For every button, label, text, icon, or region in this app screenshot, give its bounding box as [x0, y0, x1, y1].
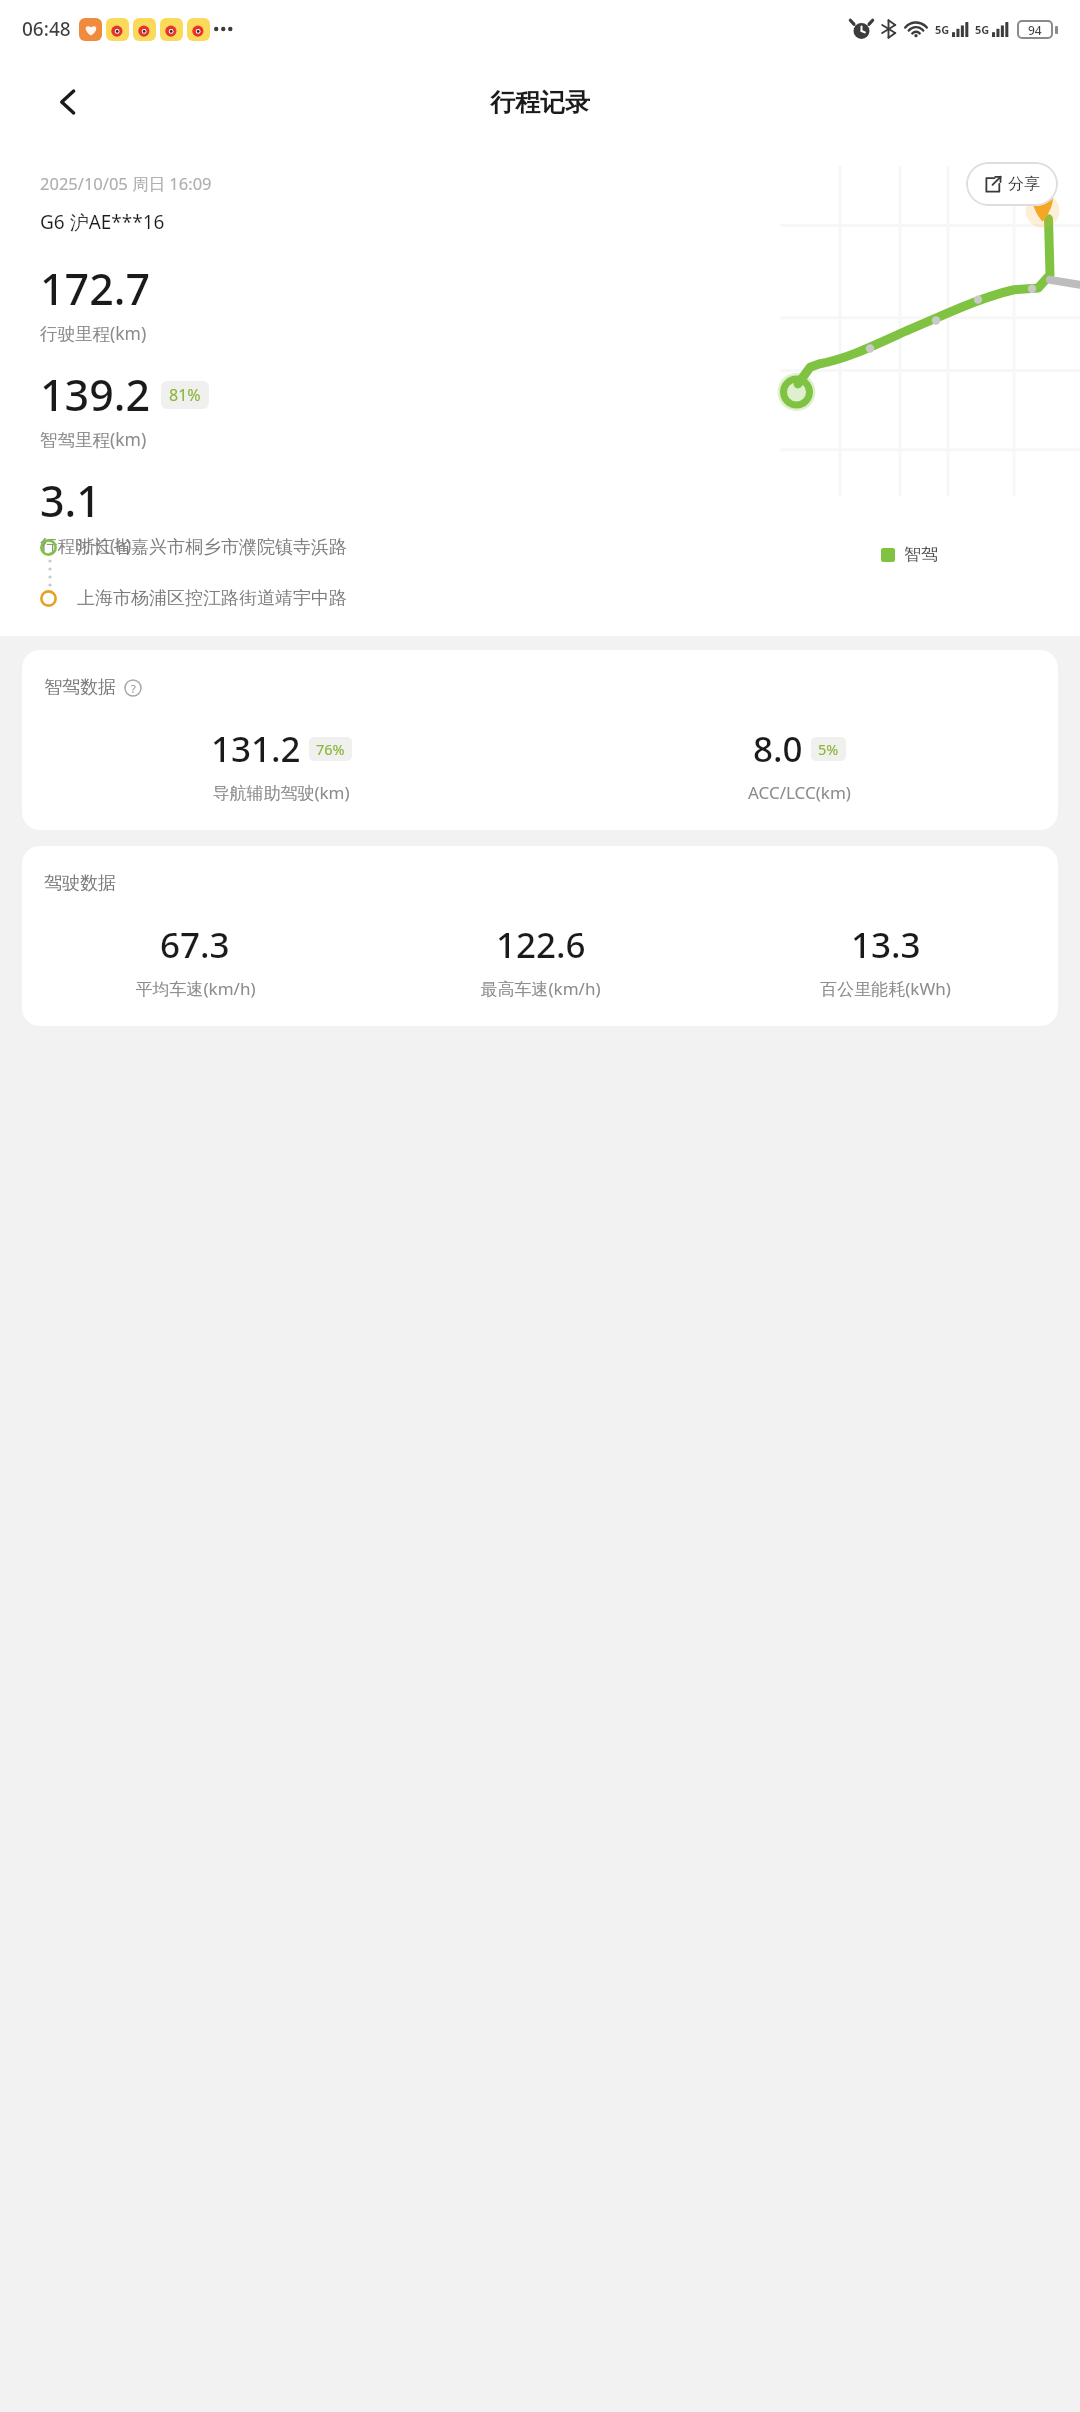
staticText: 13.3 [851, 921, 921, 969]
staticText: 8.0 [753, 725, 803, 773]
staticText: 5G [935, 22, 950, 37]
staticText: 导航辅助驾驶(km) [212, 781, 350, 804]
staticText: 67.3 [160, 921, 230, 969]
staticText: 94 [1028, 22, 1042, 38]
staticText: 百公里能耗(kWh) [820, 977, 951, 1000]
staticText: 分享 [1008, 174, 1040, 194]
staticText: G6 沪AE***16 [40, 209, 165, 235]
button[interactable]: Back [40, 73, 98, 131]
staticText: 最高车速(km/h) [480, 977, 601, 1000]
staticText: ? [131, 681, 136, 696]
staticText: 122.6 [496, 921, 586, 969]
staticText: 131.2 [211, 725, 301, 773]
staticText: 06:48 [22, 16, 71, 42]
staticText: 上海市杨浦区控江路街道靖宇中路 [77, 587, 347, 610]
staticText: 驾驶数据 [44, 872, 116, 895]
staticText: 5% [818, 739, 839, 759]
staticText: 浙江省嘉兴市桐乡市濮院镇寺浜路 [77, 536, 347, 559]
staticText: 172.7 [40, 259, 151, 318]
staticText: 76% [316, 739, 345, 759]
button[interactable]: 分享 [966, 162, 1058, 206]
staticText: 行程时长(h) [40, 533, 132, 557]
staticText: 3.1 [40, 471, 101, 530]
button[interactable]: Info [122, 677, 144, 699]
staticText: 81% [169, 384, 201, 406]
staticText: 行驶里程(km) [40, 321, 147, 345]
staticText: 139.2 [40, 365, 151, 424]
staticText: 5G [975, 22, 990, 37]
staticText: ACC/LCC(km) [748, 781, 851, 804]
staticText: 智驾 [904, 544, 938, 565]
staticText: 智驾数据 [44, 676, 116, 699]
staticText: 智驾里程(km) [40, 427, 147, 451]
staticText: 2025/10/05 周日 16:09 [40, 172, 212, 195]
staticText: 平均车速(km/h) [135, 977, 256, 1000]
staticText: 行程记录 [490, 87, 590, 118]
